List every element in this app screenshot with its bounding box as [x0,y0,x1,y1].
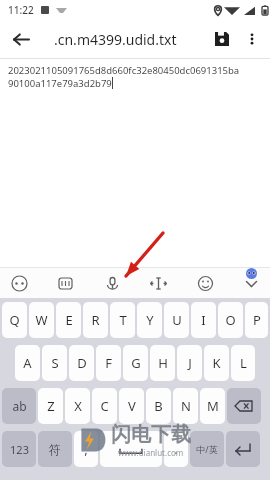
staticText: T [119,311,127,329]
staticText: S [51,354,59,372]
staticText: 11:22 [8,3,34,17]
button[interactable]: O [218,302,243,338]
staticText: E [65,311,73,329]
button[interactable]: Handwriting [52,270,78,296]
button[interactable]: Q [2,302,27,338]
button[interactable]: 2023021105091765d8d660fc32e80450dc069131… [0,59,270,267]
button[interactable]: ab [2,388,36,424]
staticText: .cn.m4399.udid.txt [54,30,177,49]
staticText: 123 [10,442,29,457]
staticText: . [174,440,178,458]
staticText: www.dianlut.com [118,447,184,458]
staticText: 90100a117e79a3d2b79 [8,77,112,90]
button[interactable]: F [96,345,121,381]
staticText: Q [9,311,20,329]
button[interactable]: Input method [6,270,32,296]
button[interactable]: More options [237,24,267,54]
staticText: J [188,354,192,372]
button[interactable]: Voice input [99,270,125,296]
button[interactable]: R [83,302,108,338]
button[interactable]: 中/英 [190,431,224,467]
button[interactable]: 123 [2,431,36,467]
staticText: N [181,397,191,415]
staticText: W [35,311,48,329]
staticText: , [84,440,88,458]
staticText: X [74,397,82,415]
button[interactable]: key [227,388,261,424]
button[interactable]: X [65,388,90,424]
staticText: U [172,311,182,329]
button[interactable]: , [74,431,98,467]
staticText: 2023021105091765d8d660fc32e80450dc069131… [8,64,240,77]
button[interactable]: Emoji [192,270,218,296]
staticText: K [212,354,221,372]
staticText: A [23,354,32,372]
button[interactable]: N [173,388,198,424]
button[interactable]: J [177,345,202,381]
staticText: L [240,354,247,372]
button[interactable]: P [245,302,268,338]
button[interactable]: K [204,345,229,381]
staticText: 符 [49,442,61,457]
button[interactable]: key [226,431,260,467]
staticText: M [207,397,219,415]
button[interactable]: I [191,302,216,338]
staticText: Y [146,311,154,329]
staticText: C [100,397,109,415]
staticText: R [91,311,100,329]
button[interactable]: A [15,345,40,381]
button[interactable]: E [56,302,81,338]
button[interactable]: Z [38,388,63,424]
staticText: ab [12,398,27,414]
staticText: F [105,354,112,372]
button[interactable]: L [231,345,255,381]
staticText: 闪电下载 [111,422,191,447]
button[interactable]: C [92,388,117,424]
button[interactable]: Save [207,24,237,54]
button[interactable]: Back [6,24,36,54]
button[interactable]: W [29,302,54,338]
button[interactable]: S [42,345,67,381]
staticText: I [201,311,206,329]
button[interactable]: key [100,431,162,467]
staticText: D [77,354,87,372]
button[interactable]: G [123,345,148,381]
staticText: G [131,354,141,372]
button[interactable]: M [200,388,225,424]
staticText: V [128,397,136,415]
button[interactable]: Move cursor [145,270,171,296]
staticText: 中/英 [196,443,218,455]
staticText: O [225,311,236,329]
button[interactable]: B [146,388,171,424]
staticText: B [154,397,163,415]
button[interactable]: 符 [38,431,72,467]
button[interactable]: T [110,302,135,338]
button[interactable]: Y [137,302,162,338]
button[interactable]: H [150,345,175,381]
staticText: Z [47,397,55,415]
button[interactable]: V [119,388,144,424]
button[interactable]: Hide keyboard [238,270,264,296]
button[interactable]: D [69,345,94,381]
staticText: P [253,311,261,329]
button[interactable]: U [164,302,189,338]
staticText: H [158,354,168,372]
button[interactable]: . [164,431,188,467]
